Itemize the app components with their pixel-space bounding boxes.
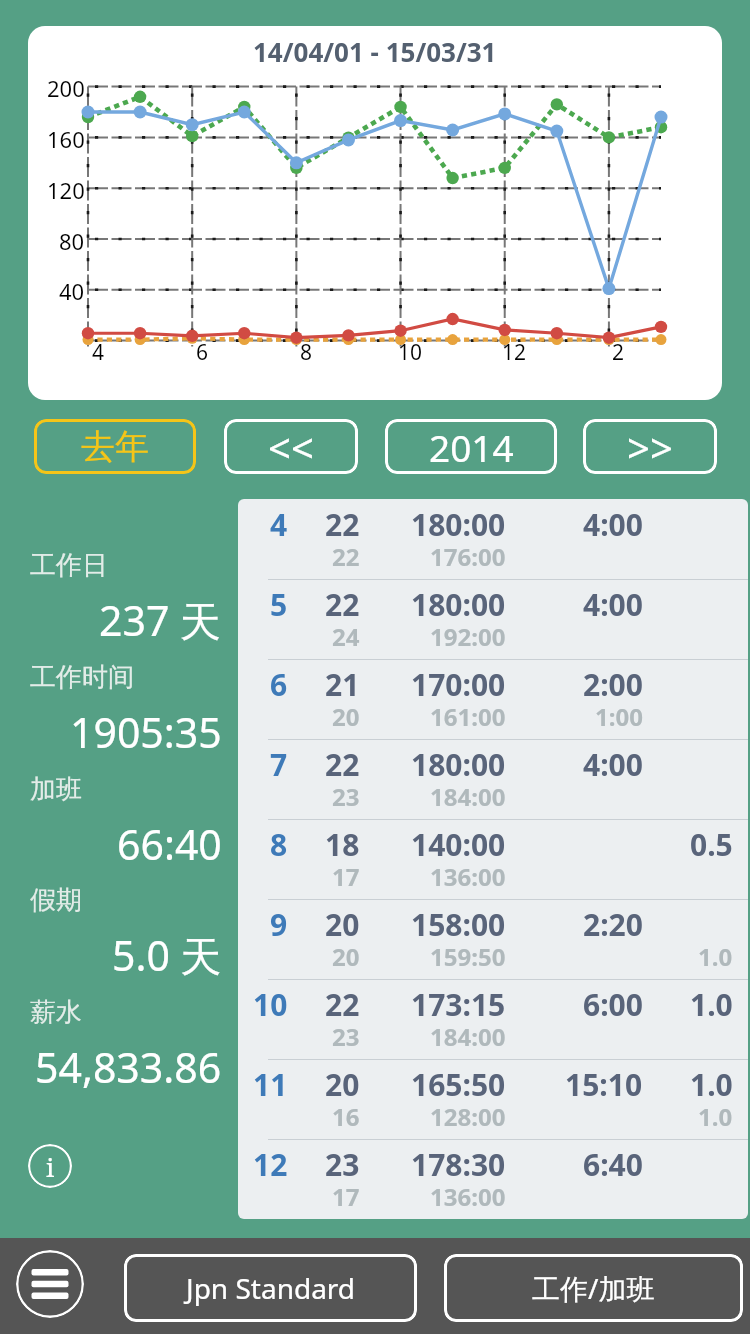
staticText: 23 <box>332 1020 360 1053</box>
staticText: >> <box>627 420 673 474</box>
staticText: 184:00 <box>430 1020 506 1053</box>
button[interactable]: << <box>224 419 358 474</box>
staticText: 18 <box>325 824 360 865</box>
staticText: 7 <box>270 744 288 785</box>
staticText: 22 <box>325 744 360 785</box>
staticText: 24 <box>332 620 360 653</box>
staticText: 184:00 <box>430 780 506 813</box>
staticText: 0.5 <box>690 824 733 865</box>
staticText: 21 <box>325 664 360 705</box>
staticText: 工作/加班 <box>532 1269 655 1307</box>
staticText: 12 <box>502 338 527 367</box>
staticText: 237 天 <box>99 592 222 648</box>
button[interactable]: 4 <box>238 499 748 579</box>
staticText: 假期 <box>30 884 82 917</box>
staticText: 10 <box>253 984 288 1025</box>
staticText: 去年 <box>81 425 149 468</box>
button[interactable]: 10 <box>238 979 748 1059</box>
staticText: 40 <box>59 276 85 306</box>
staticText: 6:40 <box>583 1144 643 1185</box>
staticText: 1.0 <box>690 984 733 1025</box>
staticText: 4 <box>270 504 288 545</box>
staticText: 120 <box>47 175 85 205</box>
staticText: 8 <box>270 824 288 865</box>
staticText: 4 <box>92 338 105 367</box>
button[interactable]: >> <box>583 419 717 474</box>
button[interactable]: 6 <box>238 659 748 739</box>
staticText: 180:00 <box>411 584 506 625</box>
staticText: 12 <box>253 1144 288 1185</box>
button[interactable]: 去年 <box>34 419 196 474</box>
staticText: 6:00 <box>583 984 643 1025</box>
staticText: 4:00 <box>583 584 643 625</box>
staticText: 11 <box>253 1064 288 1105</box>
button[interactable]: 11 <box>238 1059 748 1139</box>
staticText: 工作时间 <box>30 661 134 694</box>
button[interactable]: 12 <box>238 1139 748 1219</box>
button[interactable]: 7 <box>238 739 748 819</box>
staticText: 9 <box>270 904 288 945</box>
staticText: 22 <box>325 504 360 545</box>
staticText: 5 <box>270 584 288 625</box>
button[interactable]: 5 <box>238 579 748 659</box>
staticText: 8 <box>300 338 313 367</box>
staticText: 20 <box>332 940 360 973</box>
staticText: 1:00 <box>595 700 643 733</box>
button[interactable]: 2014 <box>385 419 557 474</box>
staticText: 2:20 <box>583 904 643 945</box>
staticText: 170:00 <box>411 664 506 705</box>
staticText: 192:00 <box>430 620 506 653</box>
staticText: 159:50 <box>430 940 506 973</box>
staticText: 6 <box>196 338 209 367</box>
staticText: 161:00 <box>430 700 506 733</box>
staticText: 薪水 <box>30 996 82 1029</box>
staticText: 4:00 <box>583 744 643 785</box>
button[interactable]: 工作/加班 <box>444 1254 743 1322</box>
staticText: 178:30 <box>411 1144 506 1185</box>
button[interactable]: 9 <box>238 899 748 979</box>
staticText: 1905:35 <box>70 704 222 760</box>
staticText: 2 <box>612 338 625 367</box>
staticText: 4:00 <box>583 504 643 545</box>
staticText: 1.0 <box>698 940 733 973</box>
staticText: 5.0 天 <box>112 927 222 983</box>
staticText: 10 <box>398 338 423 367</box>
staticText: 17 <box>332 860 360 893</box>
staticText: 20 <box>332 700 360 733</box>
staticText: 2014 <box>429 422 514 472</box>
staticText: i <box>46 1149 55 1184</box>
staticText: 66:40 <box>117 816 222 872</box>
staticText: 140:00 <box>411 824 506 865</box>
button[interactable]: Jpn Standard <box>124 1254 417 1322</box>
staticText: Jpn Standard <box>186 1269 356 1307</box>
staticText: 180:00 <box>411 504 506 545</box>
staticText: 200 <box>47 73 85 103</box>
staticText: 加班 <box>30 773 82 806</box>
button[interactable]: 8 <box>238 819 748 899</box>
staticText: 22 <box>325 584 360 625</box>
button[interactable]: Info <box>28 1144 72 1188</box>
button[interactable]: Menu <box>16 1250 84 1318</box>
staticText: 158:00 <box>411 904 506 945</box>
staticText: 23 <box>332 780 360 813</box>
staticText: 23 <box>325 1144 360 1185</box>
staticText: 工作日 <box>30 549 108 582</box>
staticText: 1.0 <box>690 1064 733 1105</box>
staticText: 136:00 <box>430 860 506 893</box>
staticText: 15:10 <box>565 1064 643 1105</box>
staticText: 20 <box>325 1064 360 1105</box>
staticText: 22 <box>325 984 360 1025</box>
staticText: 136:00 <box>430 1180 506 1213</box>
staticText: 20 <box>325 904 360 945</box>
staticText: 180:00 <box>411 744 506 785</box>
staticText: 17 <box>332 1180 360 1213</box>
staticText: 6 <box>270 664 288 705</box>
staticText: 2:00 <box>583 664 643 705</box>
staticText: 16 <box>332 1100 360 1133</box>
staticText: 1.0 <box>698 1100 733 1133</box>
staticText: 165:50 <box>411 1064 506 1105</box>
staticText: 14/04/01 - 15/03/31 <box>253 34 497 69</box>
staticText: 22 <box>332 540 360 573</box>
staticText: 160 <box>47 124 85 154</box>
staticText: << <box>268 420 314 474</box>
